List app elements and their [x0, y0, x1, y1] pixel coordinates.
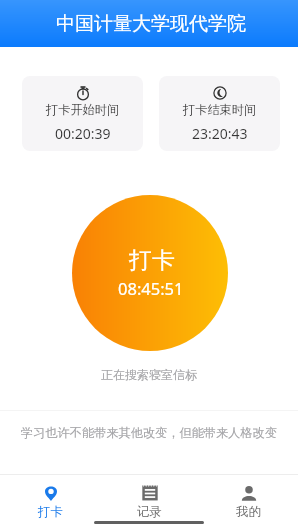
staticText: 00:20:39	[55, 124, 111, 143]
button[interactable]: 我的	[199, 475, 298, 521]
staticText: 打卡	[129, 246, 175, 275]
staticText: 23:20:43	[192, 124, 248, 143]
staticText: 我的	[236, 504, 261, 520]
staticText: 学习也许不能带来其他改变，但能带来人格改变	[21, 425, 277, 440]
staticText: 打卡开始时间	[46, 102, 120, 117]
staticText: 打卡结束时间	[183, 102, 257, 117]
staticText: 打卡	[38, 504, 63, 520]
button[interactable]: 记录	[100, 475, 199, 521]
button[interactable]: 打卡	[0, 475, 100, 521]
staticText: 08:45:51	[118, 277, 184, 299]
button[interactable]: 打卡开始时间	[22, 76, 143, 151]
staticText: 中国计量大学现代学院	[56, 12, 246, 36]
staticText: 记录	[137, 504, 162, 520]
button[interactable]: 打卡结束时间	[159, 76, 280, 151]
button[interactable]: 打卡	[72, 195, 228, 351]
staticText: 正在搜索寝室信标	[101, 367, 197, 382]
